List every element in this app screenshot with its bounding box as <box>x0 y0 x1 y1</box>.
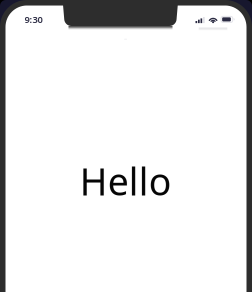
staticText: 9:30 <box>25 13 43 26</box>
staticText: Hello <box>80 156 172 206</box>
